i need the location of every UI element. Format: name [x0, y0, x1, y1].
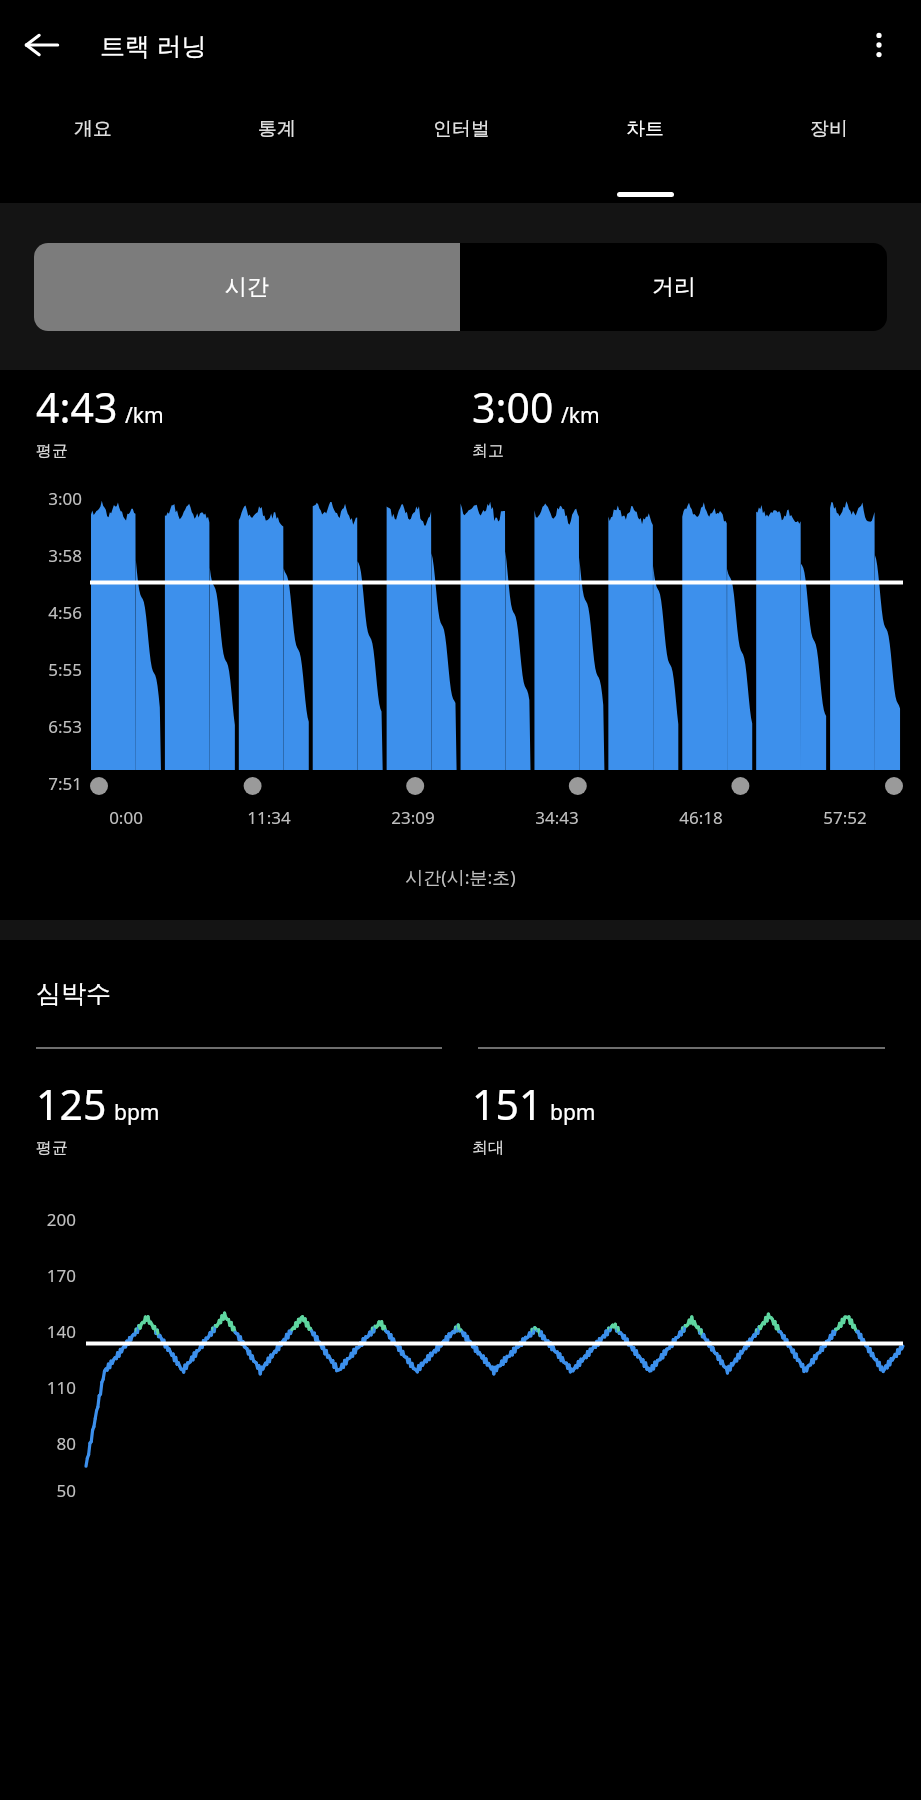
staticText: 평균 — [36, 441, 68, 461]
staticText: bpm — [550, 1098, 596, 1127]
staticText: 3:00 — [48, 487, 82, 510]
staticText: 5:55 — [48, 658, 82, 681]
staticText: 차트 — [626, 117, 664, 141]
staticText: 평균 — [36, 1138, 68, 1158]
staticText: 151 — [472, 1076, 543, 1132]
staticText: /km — [125, 401, 164, 430]
staticText: /km — [561, 401, 600, 430]
staticText: 개요 — [74, 117, 112, 141]
staticText: 46:18 — [679, 806, 723, 829]
staticText: 34:43 — [535, 806, 579, 829]
staticText: 트랙 러닝 — [100, 28, 207, 62]
button[interactable]: Back — [14, 17, 70, 73]
staticText: 3:58 — [48, 544, 82, 567]
button[interactable]: 장비 — [737, 90, 921, 203]
staticText: 200 — [46, 1208, 76, 1231]
button[interactable]: 거리 — [460, 243, 887, 331]
staticText: 심박수 — [36, 978, 111, 1009]
staticText: 50 — [56, 1479, 76, 1502]
staticText: 125 — [36, 1076, 107, 1132]
staticText: 0:00 — [109, 806, 143, 829]
button[interactable]: 차트 — [553, 90, 737, 203]
button[interactable]: 시간 — [34, 243, 460, 331]
staticText: 80 — [56, 1432, 76, 1455]
staticText: 최대 — [472, 1138, 504, 1158]
button[interactable]: 인터벌 — [369, 90, 553, 203]
staticText: 시간(시:분:초) — [405, 865, 516, 890]
staticText: 거리 — [652, 273, 696, 301]
staticText: 57:52 — [823, 806, 867, 829]
staticText: 7:51 — [48, 772, 82, 795]
staticText: 6:53 — [48, 715, 82, 738]
button[interactable]: More options — [851, 17, 907, 73]
staticText: 140 — [46, 1320, 76, 1343]
staticText: 최고 — [472, 441, 504, 461]
staticText: 장비 — [810, 117, 848, 141]
button[interactable]: 통계 — [185, 90, 369, 203]
staticText: bpm — [114, 1098, 160, 1127]
staticText: 11:34 — [247, 806, 291, 829]
button[interactable]: 개요 — [0, 90, 185, 203]
staticText: 4:43 — [36, 379, 118, 435]
staticText: 시간 — [225, 273, 269, 301]
staticText: 3:00 — [472, 379, 554, 435]
staticText: 통계 — [258, 117, 296, 141]
staticText: 110 — [46, 1376, 76, 1399]
staticText: 23:09 — [391, 806, 435, 829]
staticText: 4:56 — [48, 601, 82, 624]
staticText: 170 — [46, 1264, 76, 1287]
staticText: 인터벌 — [433, 117, 490, 141]
